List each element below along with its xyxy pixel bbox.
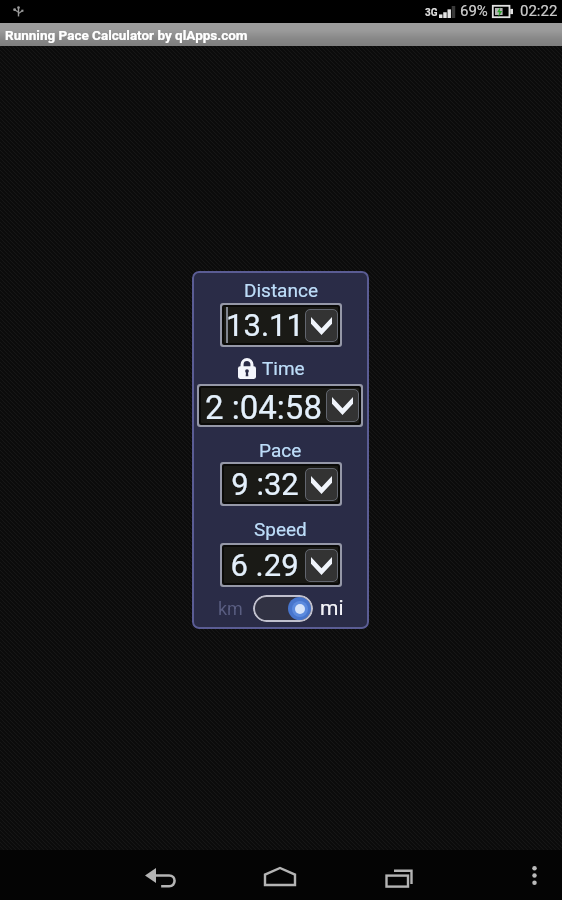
button[interactable]: Home: [257, 849, 305, 897]
button[interactable]: Open dropdown: [326, 389, 359, 422]
staticText: km: [218, 598, 243, 619]
button[interactable]: 2 :04:58: [201, 388, 359, 423]
button[interactable]: More options: [514, 855, 554, 895]
button[interactable]: 13.11: [224, 307, 338, 343]
staticText: Speed: [254, 518, 307, 540]
staticText: 3G: [425, 7, 438, 19]
staticText: 02:22: [520, 2, 558, 20]
staticText: 2 :04:58: [205, 388, 322, 423]
staticText: Running Pace Calculator by qlApps.com: [5, 27, 248, 43]
button[interactable]: Open dropdown: [305, 309, 338, 342]
staticText: 6 .29: [230, 547, 299, 583]
button[interactable]: 9 :32: [224, 466, 338, 502]
staticText: 9 :32: [231, 466, 299, 502]
button[interactable]: Back: [138, 850, 186, 898]
button[interactable]: Open dropdown: [305, 468, 338, 501]
staticText: Distance: [244, 279, 318, 301]
button[interactable]: Recents: [374, 850, 422, 898]
staticText: 13.11: [226, 307, 304, 343]
staticText: Time: [262, 357, 305, 379]
button[interactable]: 6 .29: [224, 547, 338, 583]
staticText: Pace: [259, 439, 302, 461]
button[interactable]: Unit toggle: [253, 595, 313, 622]
staticText: 69%: [460, 2, 488, 20]
staticText: mi: [320, 596, 344, 621]
button[interactable]: Open dropdown: [305, 549, 338, 582]
